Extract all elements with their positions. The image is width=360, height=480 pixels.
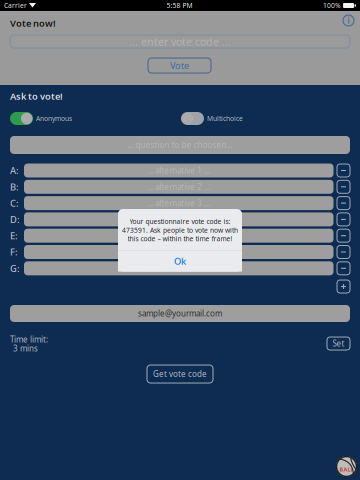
staticText: 3 mins [13,343,38,354]
staticText: 5:58 PM [166,1,192,10]
button[interactable]: Vote [148,58,211,73]
button[interactable]: Remove alternative F [337,245,350,258]
staticText: ... question to be choosen... [127,140,232,150]
staticText: 473591. Ask people to vote now with [122,226,238,234]
staticText: ... alternative 2 ... [147,181,210,192]
button[interactable]: Ok [118,251,242,272]
staticText: A: [10,164,19,177]
staticText: B: [10,181,19,193]
button[interactable]: Get vote code [147,365,213,383]
staticText: BALL [339,466,353,473]
button[interactable]: Remove alternative C [337,197,350,210]
staticText: Get vote code [153,369,207,379]
button[interactable]: Remove alternative A [337,164,350,177]
button[interactable]: Remove alternative B [337,180,350,193]
staticText: 100% [323,1,341,10]
staticText: E: [10,229,18,242]
staticText: ... alternative 3 ... [147,198,210,208]
button[interactable]: Info [342,14,355,27]
staticText: Ask to vote! [10,90,63,102]
staticText: G: [10,262,20,274]
staticText: Ok [174,255,186,267]
staticText: ... alternative 5 ... [147,230,210,241]
staticText: C: [10,197,19,209]
staticText: i [347,15,349,26]
staticText: D: [10,213,20,226]
staticText: ... alternative 6 ... [147,247,210,257]
staticText: Set [332,338,344,349]
staticText: Vote now! [10,17,56,29]
button[interactable]: Multichoice [181,112,243,125]
button[interactable]: Set [327,337,350,350]
staticText: F: [10,246,18,258]
staticText: Anonymous [36,114,72,123]
button[interactable]: Add alternative [337,280,350,293]
button[interactable]: Remove alternative G [337,262,350,275]
staticText: sample@yourmail.com [138,308,222,319]
staticText: ... alternative 1 ... [147,165,210,176]
staticText: Time limit: [10,334,48,345]
staticText: Vote [170,59,189,72]
staticText: ... enter vote code ... [129,34,231,49]
button[interactable]: Remove alternative D [337,213,350,226]
staticText: ... alternative 4 ... [147,214,210,225]
staticText: Multichoice [207,114,243,123]
staticText: ... alternative 7 ... [147,263,210,274]
staticText: Carrier [4,1,27,10]
staticText: this code – within the time frame! [127,234,232,243]
button[interactable]: Remove alternative E [337,229,350,242]
staticText: Your questionnaire vote code is: [129,217,230,226]
button[interactable]: Anonymous [10,112,72,125]
